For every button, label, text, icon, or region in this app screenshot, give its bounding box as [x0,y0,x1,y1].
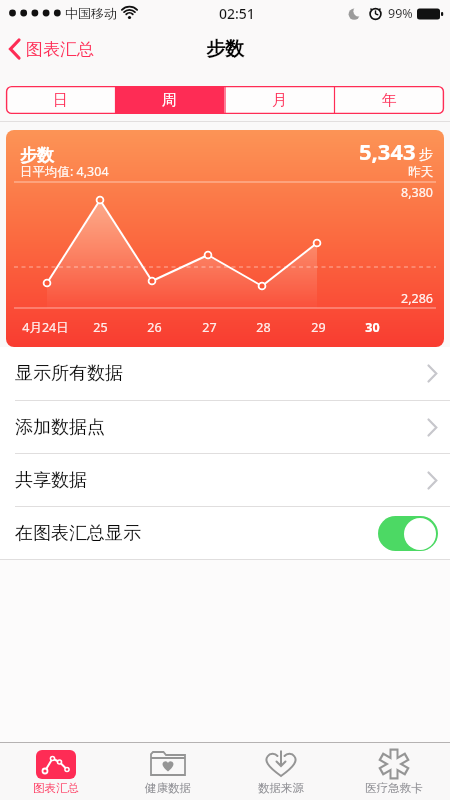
staticText: 30 [365,319,380,336]
staticText: 月 [272,91,287,110]
staticText: 28 [256,319,271,336]
button[interactable]: 日 [6,86,115,114]
staticText: 99% [388,5,413,22]
staticText: 共享数据 [15,469,87,492]
button[interactable]: 图表汇总 [0,743,112,800]
staticText: 4月24日 [22,319,69,336]
staticText: 8,380 [401,184,433,201]
staticText: 25 [93,319,108,336]
button[interactable]: 月 [224,86,334,114]
staticText: 步 [419,146,433,164]
button[interactable]: 在图表汇总显示 [0,507,450,559]
staticText: 在图表汇总显示 [15,522,141,545]
staticText: 02:51 [219,4,255,23]
staticText: 日平均值: 4,304 [20,163,109,180]
staticText: 健康数据 [145,781,191,795]
staticText: 中国移动 [65,5,117,21]
button[interactable]: 步数 [6,130,444,347]
button[interactable]: 健康数据 [112,743,224,800]
button[interactable]: 年 [334,86,444,114]
staticText: 步数 [20,145,54,166]
button[interactable]: 周 [115,86,224,114]
staticText: 2,286 [401,290,433,307]
staticText: 27 [202,319,217,336]
staticText: 数据来源 [258,781,304,795]
button[interactable]: 医疗急救卡 [337,743,450,800]
staticText: 显示所有数据 [15,362,123,385]
staticText: 添加数据点 [15,416,105,439]
staticText: 图表汇总 [33,781,79,795]
button[interactable]: 共享数据 [0,454,450,506]
button[interactable]: 添加数据点 [0,401,450,453]
staticText: 29 [311,319,326,336]
button[interactable]: 数据来源 [224,743,337,800]
staticText: 步数 [206,37,244,61]
button[interactable] [378,516,438,551]
staticText: 5,343 [359,136,416,166]
staticText: 图表汇总 [26,39,94,60]
staticText: 周 [162,91,177,110]
staticText: 年 [382,91,397,110]
staticText: 医疗急救卡 [365,781,423,795]
staticText: 昨天 [408,164,433,180]
staticText: 26 [147,319,162,336]
button[interactable]: 显示所有数据 [0,347,450,400]
staticText: 日 [53,91,68,110]
button[interactable]: 图表汇总 [8,38,94,60]
